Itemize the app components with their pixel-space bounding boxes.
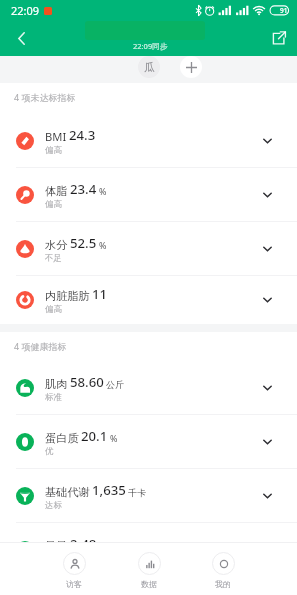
- staticText: 体脂: [45, 184, 68, 198]
- button[interactable]: 水分: [0, 222, 297, 276]
- staticText: BMI: [45, 129, 67, 144]
- staticText: %: [99, 185, 107, 197]
- staticText: 11: [92, 285, 108, 303]
- staticText: 52.5: [70, 234, 97, 252]
- staticText: 24.3: [69, 126, 96, 144]
- button[interactable]: BMI: [0, 114, 297, 168]
- staticText: 标准: [45, 392, 62, 403]
- staticText: 蛋白质: [45, 431, 79, 445]
- staticText: 肌肉: [45, 377, 68, 391]
- staticText: %: [99, 239, 107, 251]
- staticText: 达标: [45, 500, 62, 511]
- staticText: 4 项健康指标: [14, 340, 67, 352]
- staticText: 22:09: [11, 3, 40, 18]
- button[interactable]: 访客: [46, 543, 102, 589]
- staticText: 数据: [141, 579, 157, 589]
- staticText: 公斤: [99, 541, 117, 552]
- staticText: 58.60: [70, 373, 104, 391]
- staticText: 91: [280, 6, 288, 15]
- staticText: 2.48: [70, 535, 97, 553]
- staticText: 瓜: [144, 60, 155, 74]
- button[interactable]: Share: [259, 21, 297, 56]
- button[interactable]: 瓜: [138, 56, 160, 78]
- staticText: 不足: [45, 253, 62, 264]
- button[interactable]: Add: [180, 56, 202, 78]
- staticText: 4 项未达标指标: [14, 91, 76, 103]
- staticText: 20.1: [81, 427, 108, 445]
- staticText: 1,635: [92, 481, 126, 499]
- button[interactable]: 骨量: [0, 523, 297, 576]
- staticText: 内脏脂肪: [45, 289, 90, 303]
- button[interactable]: 我的: [195, 543, 251, 589]
- staticText: 访客: [66, 579, 82, 589]
- staticText: 基础代谢: [45, 485, 90, 499]
- button[interactable]: 基础代谢: [0, 469, 297, 523]
- staticText: 优: [45, 446, 54, 457]
- staticText: %: [110, 432, 118, 444]
- button[interactable]: 体脂: [0, 168, 297, 222]
- staticText: 偏高: [45, 145, 62, 156]
- staticText: 23.4: [70, 180, 97, 198]
- button[interactable]: 蛋白质: [0, 415, 297, 469]
- staticText: 22:09同步: [133, 41, 168, 51]
- staticText: 偏高: [45, 304, 62, 315]
- staticText: 公斤: [106, 379, 124, 390]
- button[interactable]: 数据: [121, 543, 177, 589]
- staticText: 偏高: [45, 199, 62, 210]
- button[interactable]: 肌肉: [0, 361, 297, 415]
- button[interactable]: 内脏脂肪: [0, 276, 297, 324]
- staticText: 我的: [215, 579, 231, 589]
- staticText: 水分: [45, 238, 68, 252]
- staticText: 千卡: [128, 487, 146, 498]
- button[interactable]: Back: [0, 21, 42, 56]
- staticText: 骨量: [45, 539, 68, 553]
